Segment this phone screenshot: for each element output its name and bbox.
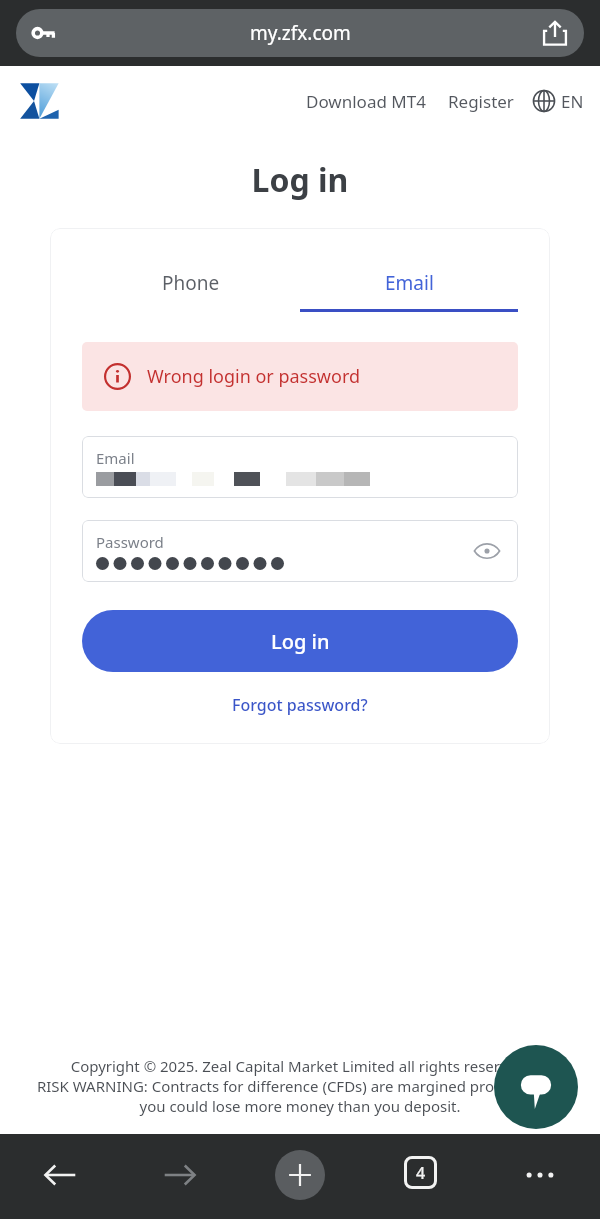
staticText: Forgot password? [232, 694, 368, 716]
staticText: Download MT4 [306, 90, 426, 113]
button[interactable]: Log in [82, 610, 518, 672]
button[interactable]: Password [82, 520, 518, 582]
staticText: Email [96, 448, 135, 468]
staticText: Copyright © 2025. Zeal Capital Market Li… [10, 1056, 590, 1076]
button[interactable]: Forward [120, 1134, 240, 1219]
button[interactable]: EN [532, 83, 584, 119]
button[interactable]: Tabs, 4 open [360, 1134, 480, 1219]
button[interactable]: Phone [82, 254, 300, 312]
staticText: EN [561, 90, 584, 113]
staticText: Register [448, 90, 514, 113]
button[interactable]: Email [82, 436, 518, 498]
staticText: Wrong login or password [147, 364, 361, 389]
staticText: Phone [162, 270, 220, 296]
staticText: RISK WARNING: Contracts for difference (… [10, 1076, 590, 1096]
button[interactable]: Download MT4 [302, 84, 430, 119]
staticText: Log in [0, 158, 600, 202]
staticText: Log in [271, 628, 330, 655]
button[interactable]: More options [480, 1134, 600, 1219]
button[interactable]: Email [300, 254, 518, 312]
staticText: you could lose more money than you depos… [10, 1096, 590, 1116]
button[interactable]: Open chat [494, 1045, 578, 1129]
button[interactable]: Back [0, 1134, 120, 1219]
button[interactable]: Site information [16, 9, 584, 57]
staticText: 4 [416, 1162, 426, 1184]
button[interactable]: Show password [472, 536, 502, 566]
button[interactable]: Register [444, 84, 518, 119]
button[interactable]: Site information [30, 18, 60, 48]
button[interactable]: New tab [240, 1134, 360, 1219]
button[interactable]: Forgot password? [82, 694, 518, 716]
button[interactable]: Share [542, 20, 568, 46]
staticText: Email [385, 270, 434, 296]
staticText: Password [96, 532, 164, 552]
button[interactable]: ZFX home [16, 75, 68, 127]
staticText: my.zfx.com [250, 20, 351, 46]
